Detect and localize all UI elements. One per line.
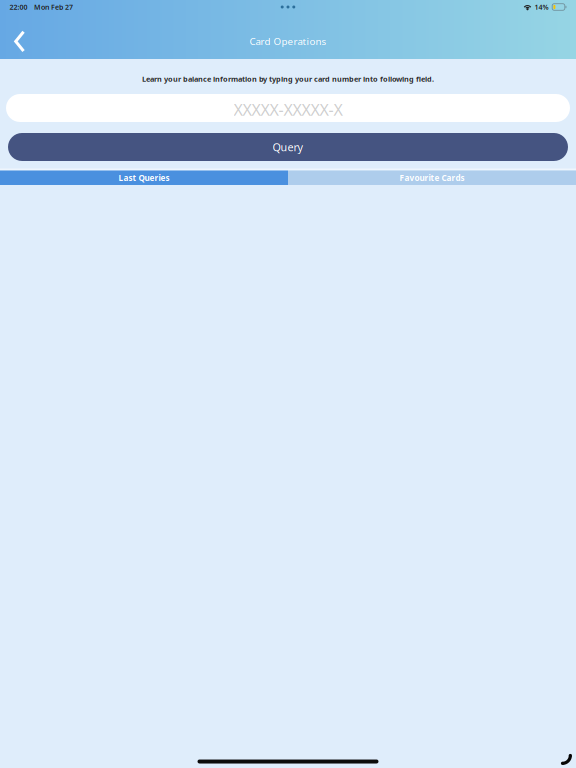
staticText: Favourite Cards bbox=[399, 172, 464, 183]
staticText: Last Queries bbox=[118, 172, 169, 183]
staticText: Learn your balance information by typing… bbox=[142, 74, 434, 84]
staticText: Card Operations bbox=[249, 35, 326, 48]
button[interactable]: Back bbox=[0, 29, 37, 54]
button[interactable]: Query bbox=[0, 133, 576, 161]
staticText: 14% bbox=[535, 2, 549, 12]
staticText: Mon Feb 27 bbox=[34, 2, 73, 12]
staticText: XXXXX-XXXXX-X bbox=[233, 98, 342, 120]
staticText: Query bbox=[272, 140, 303, 154]
button[interactable]: Favourite Cards bbox=[288, 170, 576, 185]
button[interactable]: Last Queries bbox=[0, 170, 288, 185]
staticText: 22:00 bbox=[9, 2, 27, 12]
